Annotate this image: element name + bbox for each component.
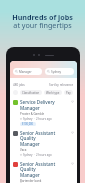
staticText: Manager xyxy=(20,172,40,178)
button[interactable]: Senior Assistant Quality xyxy=(10,161,77,183)
staticText: Service Delivery xyxy=(20,99,55,105)
staticText: Work type xyxy=(46,91,60,95)
staticText: Vaca xyxy=(20,148,27,152)
button[interactable]: Work type xyxy=(44,90,62,95)
button[interactable]: Filters xyxy=(13,90,18,95)
button[interactable]: Service Delivery xyxy=(10,99,77,130)
staticText: Manager xyxy=(19,70,32,74)
staticText: Senior Assistant Quality xyxy=(20,161,71,172)
button[interactable]: Save job xyxy=(71,162,74,165)
staticText: at your fingertips xyxy=(13,20,72,30)
button[interactable]: Pay xyxy=(64,90,73,95)
staticText: Senior Assistant Quality xyxy=(20,130,71,141)
staticText: Sydney · 2 hours ago xyxy=(23,117,52,121)
staticText: Classification xyxy=(22,91,40,95)
staticText: Procter & Gamble xyxy=(20,112,45,116)
staticText: Sydney xyxy=(51,70,62,74)
staticText: Sydney · 2 hours ago xyxy=(23,153,52,157)
button[interactable]: Sydney xyxy=(45,68,74,75)
staticText: Bartender bank xyxy=(20,179,42,183)
staticText: Sort by relevance xyxy=(49,83,74,87)
staticText: 480 jobs xyxy=(13,83,25,87)
staticText: Pay xyxy=(66,91,71,95)
staticText: Manager xyxy=(20,105,40,111)
staticText: Hundreds of jobs xyxy=(12,12,73,22)
button[interactable]: Senior Assistant Quality xyxy=(10,130,77,161)
button[interactable]: Classification xyxy=(20,90,42,95)
button[interactable]: Save job xyxy=(71,100,74,103)
button[interactable]: Save job xyxy=(71,131,74,134)
button[interactable]: Manager xyxy=(13,68,42,75)
staticText: $100,000 xyxy=(22,122,34,126)
staticText: Manager xyxy=(20,141,40,147)
